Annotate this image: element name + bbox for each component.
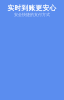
staticText: 安全快捷的支付方式 <box>14 12 50 17</box>
staticText: 实时到账更安心 <box>7 4 56 12</box>
